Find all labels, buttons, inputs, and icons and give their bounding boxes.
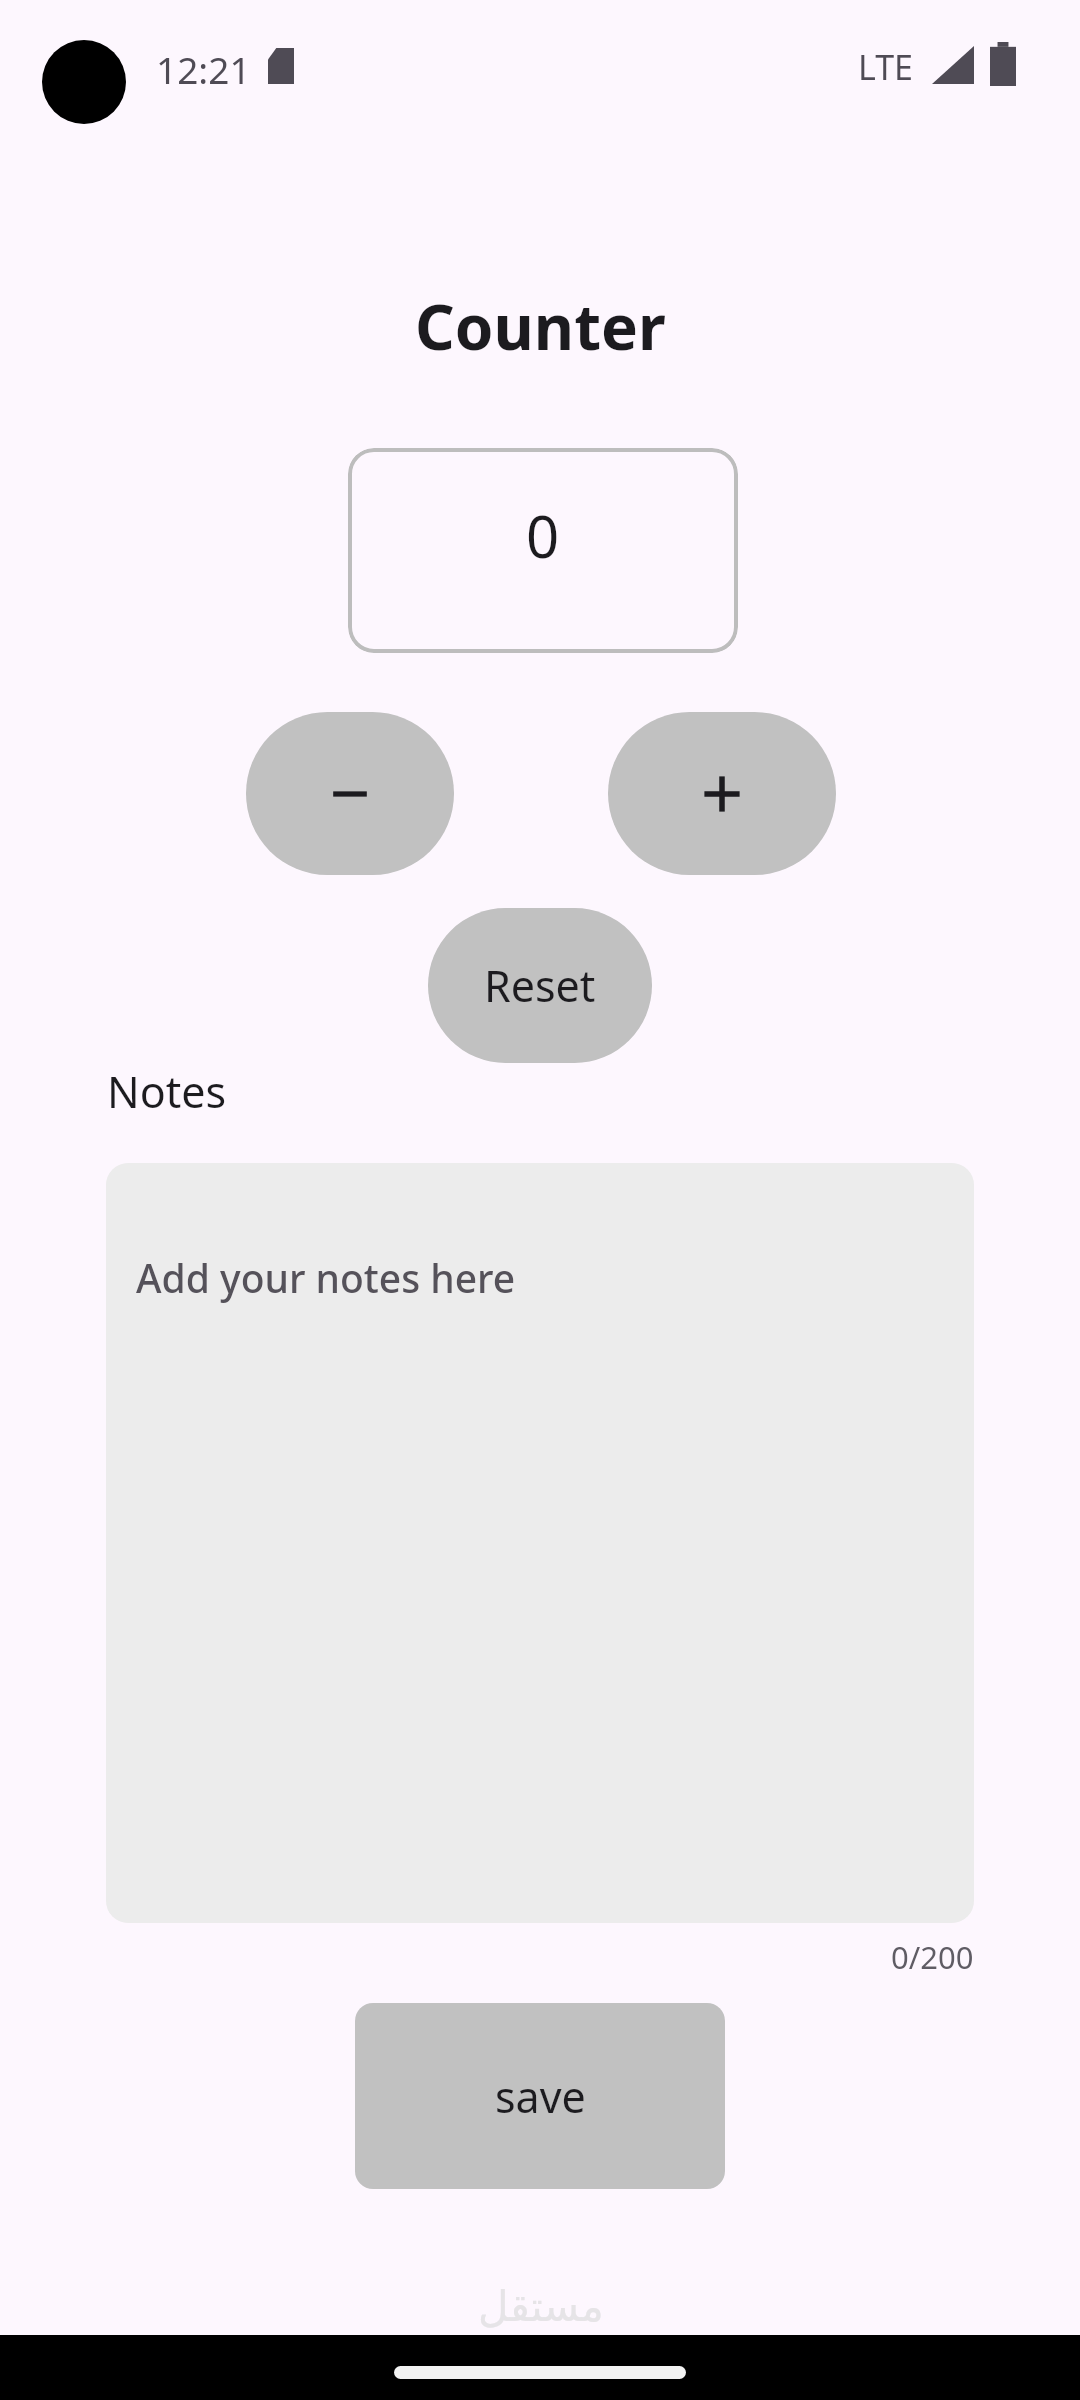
button[interactable]: Reset (428, 908, 652, 1063)
staticText: Notes (107, 1062, 227, 1121)
staticText: 12:21 (156, 44, 251, 94)
button[interactable]: Increment counter (608, 712, 836, 875)
staticText: 0/200 (891, 1936, 974, 1978)
button[interactable]: Add your notes here (106, 1163, 974, 1923)
button[interactable]: save (355, 2003, 725, 2189)
staticText: save (495, 2067, 586, 2126)
staticText: Counter (415, 284, 666, 368)
staticText: Reset (484, 956, 596, 1015)
staticText: LTE (858, 44, 913, 90)
staticText: Add your notes here (136, 1251, 516, 1304)
staticText: مستقل (478, 2282, 604, 2331)
button[interactable]: 0 (348, 448, 738, 653)
staticText: mostaqi.com (458, 2332, 623, 2369)
button[interactable]: Decrement counter (246, 712, 454, 875)
staticText: 0 (526, 496, 560, 575)
